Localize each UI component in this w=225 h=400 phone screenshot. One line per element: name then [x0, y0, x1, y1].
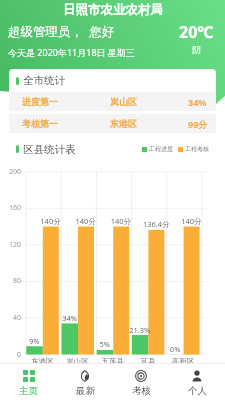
staticText: 考核第一 — [22, 118, 58, 129]
button[interactable]: 进度第一 — [9, 92, 216, 111]
staticText: 34% — [188, 96, 207, 108]
staticText: 日照市农业农村局 — [63, 2, 163, 18]
staticText: 工程考核 — [185, 145, 209, 153]
staticText: 超级管理员， 您好 — [8, 23, 115, 40]
staticText: 考核 — [132, 385, 151, 397]
staticText: 东港区 — [110, 118, 137, 129]
staticText: 主页 — [19, 385, 38, 397]
button[interactable]: 考核第一 — [9, 114, 216, 133]
button[interactable]: 最新 — [57, 363, 113, 400]
staticText: 阴 — [192, 44, 201, 55]
button[interactable]: 个人 — [169, 363, 225, 400]
staticText: 20℃ — [179, 21, 214, 43]
staticText: 区县统计表 — [23, 143, 76, 156]
staticText: 工程进度 — [149, 145, 173, 153]
staticText: 岚山区 — [110, 96, 137, 107]
staticText: 今天是 2020年11月18日 星期三 — [8, 46, 135, 58]
staticText: 进度第一 — [22, 96, 58, 107]
staticText: 最新 — [76, 385, 95, 397]
staticText: 个人 — [188, 385, 207, 397]
button[interactable]: 主页 — [0, 363, 57, 400]
staticText: 全市统计 — [23, 74, 65, 87]
button[interactable]: 考核 — [113, 363, 169, 400]
staticText: 99分 — [188, 118, 208, 130]
